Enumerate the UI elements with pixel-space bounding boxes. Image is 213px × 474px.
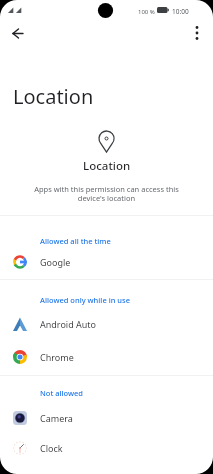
button[interactable] [0, 433, 213, 463]
staticText: Allowed all the time [40, 236, 111, 246]
staticText: Allowed only while in use [40, 295, 130, 305]
staticText: Location [13, 83, 94, 110]
button[interactable] [190, 25, 204, 41]
staticText: Not allowed [40, 388, 84, 398]
staticText: 100 % [138, 8, 155, 16]
button[interactable] [0, 247, 213, 277]
staticText: Location [83, 158, 131, 174]
staticText: 10:00 [172, 7, 189, 16]
button[interactable] [0, 342, 213, 372]
button[interactable] [0, 309, 213, 339]
staticText: Android Auto [40, 318, 97, 330]
staticText: Camera [40, 412, 73, 424]
button[interactable] [12, 28, 24, 39]
staticText: Google [40, 256, 71, 268]
button[interactable] [0, 403, 213, 433]
staticText: Chrome [40, 351, 74, 363]
staticText: Clock [40, 442, 63, 454]
staticText: Apps with this permission can access thi… [34, 184, 179, 204]
